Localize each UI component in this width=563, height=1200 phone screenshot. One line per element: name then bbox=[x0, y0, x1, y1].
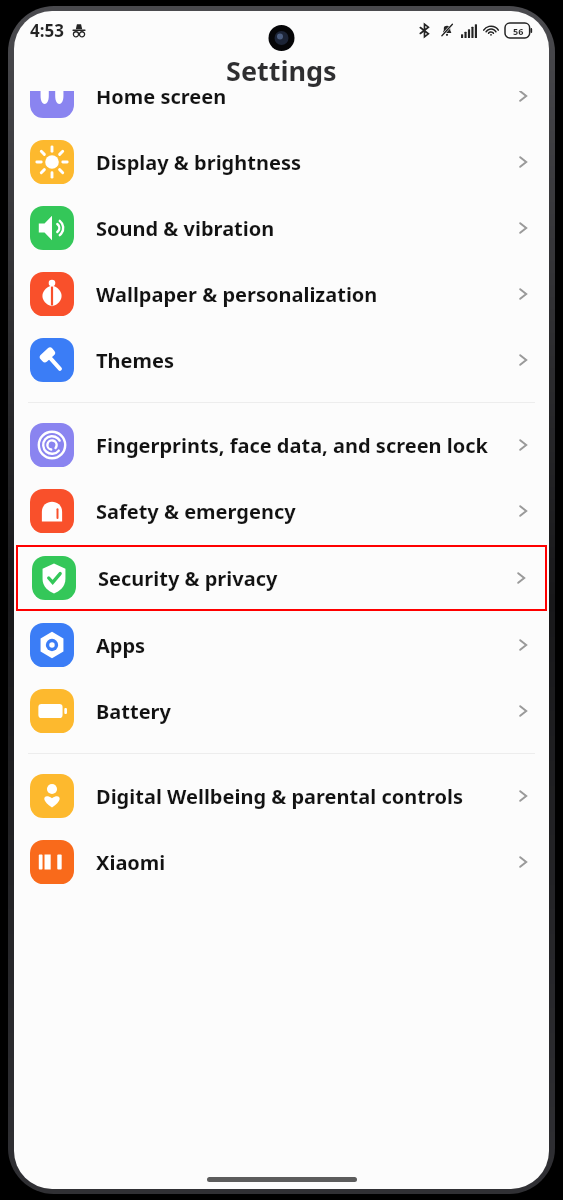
staticText: Apps bbox=[96, 632, 503, 659]
other: Sound and vibration bbox=[30, 206, 74, 250]
other: Themes bbox=[30, 338, 74, 382]
other: Xiaomi bbox=[30, 840, 74, 884]
staticText: Digital Wellbeing & parental controls bbox=[96, 783, 503, 810]
button[interactable]: Battery bbox=[14, 678, 549, 744]
staticText: Xiaomi bbox=[96, 849, 503, 876]
staticText: Display & brightness bbox=[96, 149, 503, 176]
staticText: Security & privacy bbox=[98, 565, 501, 592]
staticText: Home screen bbox=[96, 91, 503, 110]
button[interactable]: Themes bbox=[14, 327, 549, 393]
other: Security and privacy bbox=[32, 556, 76, 600]
staticText: Fingerprints, face data, and screen lock bbox=[96, 432, 503, 459]
other: Fingerprints and screen lock bbox=[30, 423, 74, 467]
staticText: 4:53 bbox=[30, 19, 64, 42]
button[interactable]: Display and brightness bbox=[14, 129, 549, 195]
button[interactable]: Home screen bbox=[14, 91, 549, 129]
staticText: 56 bbox=[513, 25, 524, 37]
other: Apps bbox=[30, 623, 74, 667]
staticText: Themes bbox=[96, 347, 503, 374]
other: Display and brightness bbox=[30, 140, 74, 184]
button[interactable]: Fingerprints and screen lock bbox=[14, 412, 549, 478]
button[interactable]: Sound and vibration bbox=[14, 195, 549, 261]
other: Digital Wellbeing bbox=[30, 774, 74, 818]
other: Home screen bbox=[30, 91, 74, 118]
button[interactable]: Xiaomi bbox=[14, 829, 549, 895]
staticText: Battery bbox=[96, 698, 503, 725]
other: Wallpaper and personalization bbox=[30, 272, 74, 316]
other: Battery bbox=[30, 689, 74, 733]
staticText: Safety & emergency bbox=[96, 498, 503, 525]
button[interactable]: Wallpaper and personalization bbox=[14, 261, 549, 327]
button[interactable]: Safety and emergency bbox=[14, 478, 549, 544]
button[interactable]: Digital Wellbeing bbox=[14, 763, 549, 829]
staticText: Sound & vibration bbox=[96, 215, 503, 242]
staticText: Settings bbox=[226, 52, 337, 89]
button[interactable]: Security and privacy bbox=[16, 545, 547, 611]
other: Safety and emergency bbox=[30, 489, 74, 533]
button[interactable]: Apps bbox=[14, 612, 549, 678]
staticText: Wallpaper & personalization bbox=[96, 281, 503, 308]
